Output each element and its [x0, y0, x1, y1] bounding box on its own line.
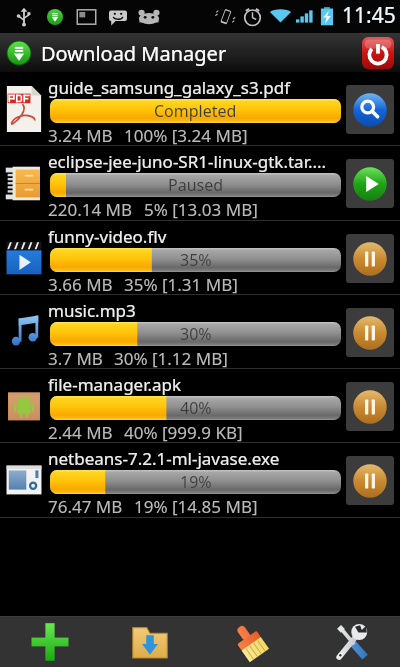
button[interactable]: file-manager.apk: [0, 369, 400, 443]
staticText: 19%: [180, 471, 212, 493]
staticText: Paused: [168, 174, 224, 196]
button[interactable]: eclipse-jee-juno-SR1-linux-gtk.tar....: [0, 146, 400, 221]
staticText: Completed: [154, 100, 237, 122]
staticText: 3.66 MB: [48, 273, 113, 296]
staticText: 11:45: [342, 1, 396, 30]
staticText: 40%: [180, 397, 212, 419]
button[interactable]: guide_samsung_galaxy_s3.pdf: [0, 72, 400, 146]
staticText: 35%: [180, 249, 212, 271]
button[interactable]: Downloads folder: [100, 616, 200, 667]
button[interactable]: music.mp3: [0, 295, 400, 369]
staticText: file-manager.apk: [48, 373, 343, 396]
staticText: 2.44 MB: [48, 421, 113, 444]
button[interactable]: funny-video.flv: [0, 221, 400, 295]
staticText: 19% [14.85 MB]: [134, 495, 258, 518]
staticText: Download Manager: [41, 40, 227, 67]
staticText: netbeans-7.2.1-ml-javase.exe: [48, 447, 343, 470]
staticText: 220.14 MB: [48, 198, 133, 221]
button[interactable]: Pause download: [346, 234, 394, 283]
button[interactable]: Resume download: [346, 159, 394, 208]
staticText: 30% [1.12 MB]: [114, 347, 228, 370]
staticText: 76.47 MB: [48, 495, 123, 518]
staticText: 3.24 MB: [48, 124, 113, 147]
button[interactable]: Pause download: [346, 456, 394, 505]
staticText: 40% [999.9 KB]: [124, 421, 243, 444]
staticText: 3.7 MB: [48, 347, 103, 370]
button[interactable]: netbeans-7.2.1-ml-javase.exe: [0, 443, 400, 518]
staticText: 35% [1.31 MB]: [124, 273, 238, 296]
staticText: 100% [3.24 MB]: [124, 124, 248, 147]
staticText: music.mp3: [48, 299, 343, 322]
button[interactable]: Pause download: [346, 308, 394, 357]
button[interactable]: Open file: [346, 85, 394, 134]
staticText: guide_samsung_galaxy_s3.pdf: [48, 76, 343, 99]
button[interactable]: Pause download: [346, 382, 394, 431]
staticText: eclipse-jee-juno-SR1-linux-gtk.tar....: [48, 150, 343, 173]
staticText: 30%: [180, 323, 212, 345]
staticText: 5% [13.03 MB]: [144, 198, 258, 221]
button[interactable]: Clear completed: [200, 616, 300, 667]
staticText: funny-video.flv: [48, 225, 343, 248]
button[interactable]: Add download: [0, 616, 100, 667]
button[interactable]: Exit: [362, 37, 394, 69]
button[interactable]: Settings: [300, 616, 400, 667]
